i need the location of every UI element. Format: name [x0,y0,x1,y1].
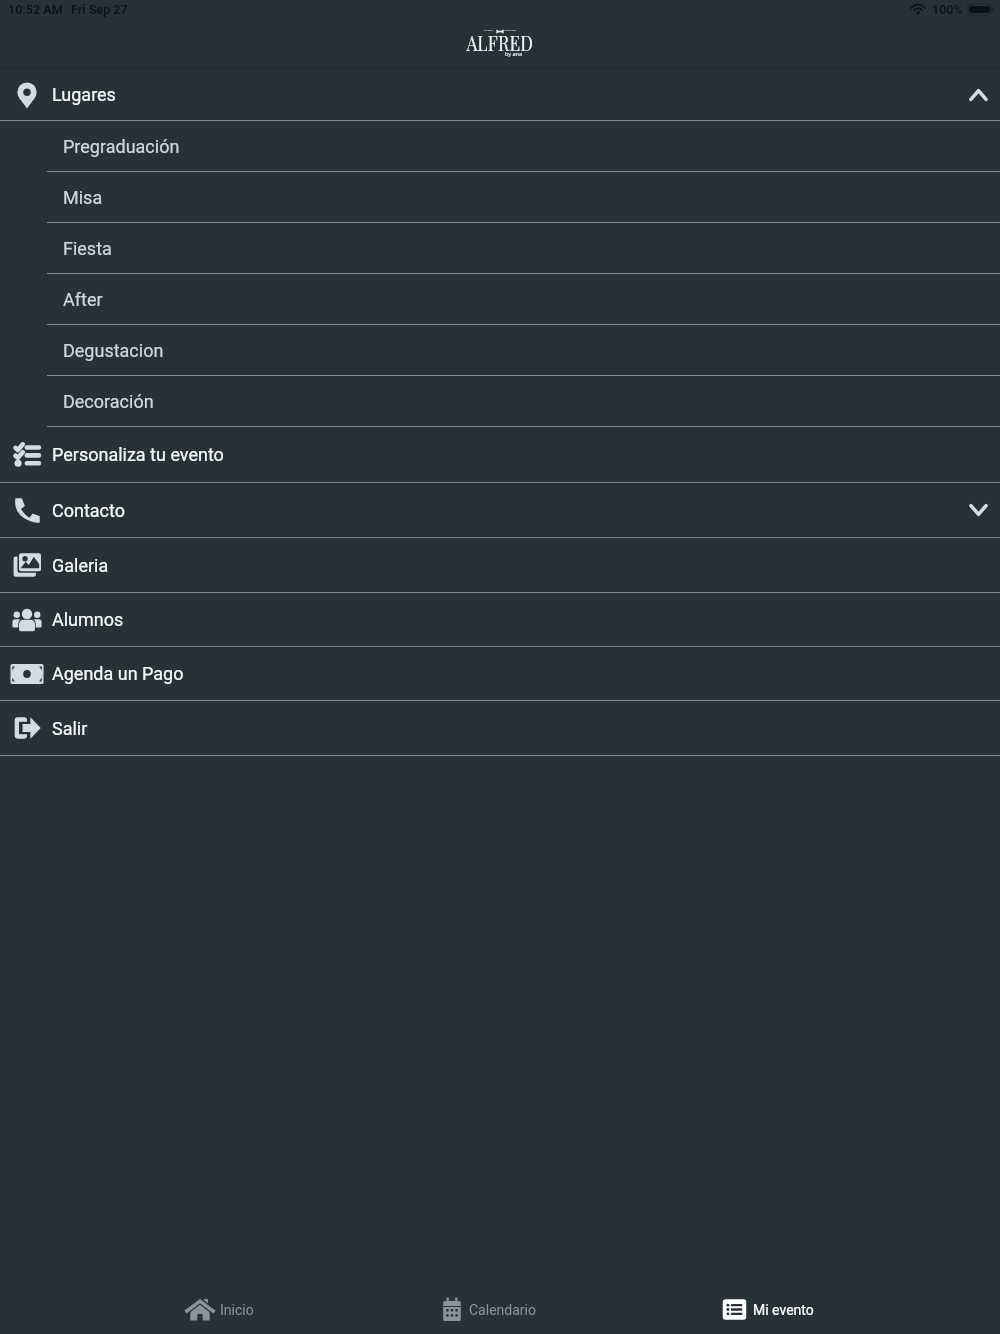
button[interactable]: Mi evento [722,1285,814,1334]
staticText: 100% [932,2,963,17]
button[interactable]: After [0,274,1000,325]
staticText: Degustacion [63,340,164,361]
staticText: Pregraduación [63,136,180,157]
staticText: Decoración [63,391,154,412]
button[interactable]: Personaliza tu evento [0,427,1000,482]
button[interactable]: Galeria [0,538,1000,592]
staticText: Fiesta [63,238,112,259]
button[interactable]: Fiesta [0,223,1000,274]
other: Inicio [186,1298,214,1321]
button[interactable]: Calendario [441,1285,536,1334]
button[interactable]: Decoración [0,376,1000,427]
button[interactable]: Contacto [0,483,1000,537]
button[interactable]: Agenda un Pago [0,647,1000,700]
staticText: Fri Sep 27 [71,2,128,17]
staticText: Alumnos [52,609,124,630]
staticText: Personaliza tu evento [52,444,224,465]
staticText: Salir [52,718,88,739]
staticText: After [63,289,103,310]
staticText: Inicio [220,1302,254,1318]
button[interactable]: Alumnos [0,593,1000,646]
other: Expandir [969,503,988,517]
button[interactable]: Inicio [186,1285,254,1334]
button[interactable]: Lugares [0,69,1000,120]
button[interactable]: Misa [0,172,1000,223]
button[interactable]: Pregraduación [0,121,1000,172]
staticText: Misa [63,187,103,208]
staticText: by ana [505,50,523,58]
other: Calendario [441,1297,463,1322]
other: Contraer [969,88,988,102]
staticText: Calendario [469,1302,536,1318]
staticText: Galeria [52,555,109,576]
staticText: Contacto [52,500,126,521]
staticText: Agenda un Pago [52,663,184,684]
button[interactable]: Salir [0,701,1000,755]
button[interactable]: Degustacion [0,325,1000,376]
other: Mi evento [722,1298,747,1321]
staticText: 10:52 AM [8,2,63,17]
staticText: Mi evento [753,1302,814,1318]
staticText: Lugares [52,84,116,105]
staticText: ALFRED [467,28,533,56]
staticText: EVENT STEWARD [484,29,517,32]
